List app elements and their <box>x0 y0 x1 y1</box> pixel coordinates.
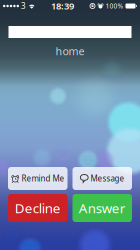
staticText: 18:39 <box>51 0 74 12</box>
staticText: Answer <box>79 199 126 217</box>
button[interactable]: Remind Me <box>8 167 67 190</box>
staticText: Message <box>90 173 124 184</box>
staticText: home <box>55 44 84 58</box>
button[interactable]: Message <box>72 167 132 190</box>
button[interactable]: Decline <box>8 194 67 222</box>
staticText: 100% <box>105 2 123 10</box>
button[interactable]: Answer <box>72 194 132 222</box>
staticText: Decline <box>15 199 61 217</box>
staticText: 3 <box>19 1 26 11</box>
staticText: Remind Me <box>21 173 64 184</box>
